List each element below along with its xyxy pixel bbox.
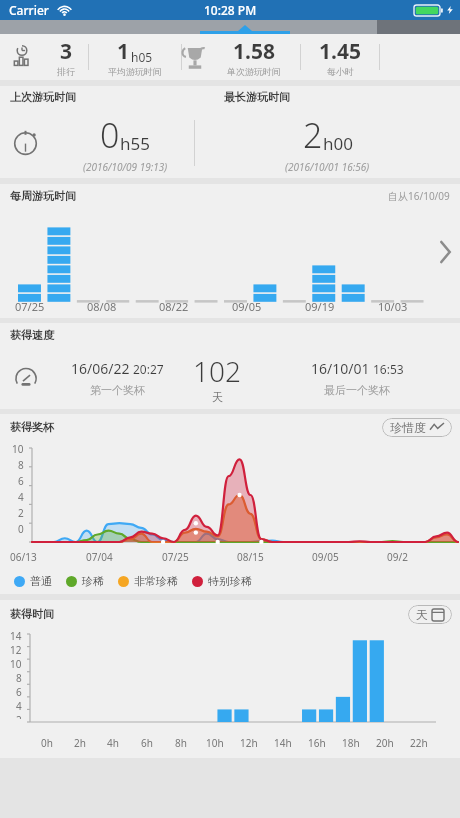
staticText: 最长游玩时间 — [224, 90, 290, 104]
staticText: 最后一个奖杯 — [324, 383, 390, 397]
staticText: 单次游玩时间 — [227, 66, 281, 77]
staticText: 非常珍稀 — [134, 574, 178, 588]
button[interactable]: 普通 — [14, 574, 52, 588]
staticText: 6h — [141, 736, 153, 750]
staticText: 102 — [193, 352, 241, 390]
staticText: 每周游玩时间 — [10, 189, 76, 203]
staticText: h55 — [120, 132, 150, 155]
staticText: 获得时间 — [10, 607, 54, 621]
staticText: 16/10/01 — [311, 359, 370, 378]
staticText: 08/08 — [87, 299, 117, 314]
staticText: 1 — [117, 37, 130, 66]
staticText: (2016/10/01 16:56) — [285, 160, 370, 174]
staticText: 12 — [10, 643, 22, 657]
staticText: 10 — [10, 657, 22, 671]
staticText: 2 — [18, 506, 24, 520]
staticText: 16h — [308, 736, 326, 750]
staticText: 14h — [274, 736, 292, 750]
staticText: 0 — [18, 522, 24, 536]
staticText: 07/04 — [86, 550, 113, 564]
staticText: 08/22 — [159, 299, 189, 314]
staticText: 10h — [206, 736, 224, 750]
staticText: 09/19 — [305, 299, 335, 314]
staticText: 6 — [16, 685, 22, 699]
staticText: 上次游玩时间 — [10, 90, 76, 104]
staticText: 自从16/10/09 — [388, 189, 450, 203]
staticText: 珍稀 — [82, 574, 104, 588]
staticText: 2 — [303, 112, 323, 158]
staticText: 3 — [60, 37, 73, 66]
staticText: 普通 — [30, 574, 52, 588]
button[interactable]: 珍稀 — [66, 574, 104, 588]
staticText: Carrier — [9, 2, 49, 18]
staticText: 每小时 — [327, 66, 354, 77]
staticText: (2016/10/09 19:13) — [83, 160, 168, 174]
staticText: 获得奖杯 — [10, 420, 54, 434]
staticText: 10/03 — [378, 299, 408, 314]
staticText: 1.45 — [319, 37, 361, 66]
staticText: 4 — [18, 490, 24, 504]
staticText: 6 — [18, 474, 24, 488]
staticText: 20:27 — [133, 361, 164, 377]
staticText: 07/25 — [162, 550, 189, 564]
staticText: 09/2 — [387, 550, 408, 564]
button[interactable]: 非常珍稀 — [118, 574, 178, 588]
staticText: 4h — [107, 736, 119, 750]
staticText: 14 — [10, 629, 22, 643]
staticText: h05 — [131, 49, 153, 65]
staticText: 22h — [410, 736, 428, 750]
staticText: 12h — [240, 736, 258, 750]
staticText: 8 — [16, 671, 22, 685]
button[interactable]: Rarity chart — [382, 418, 452, 437]
staticText: h00 — [323, 132, 353, 155]
staticText: 09/05 — [232, 299, 262, 314]
staticText: 平均游玩时间 — [108, 66, 162, 77]
button[interactable]: Day view — [408, 605, 452, 624]
staticText: 16/06/22 — [71, 359, 130, 378]
staticText: 4 — [16, 699, 22, 713]
staticText: 特别珍稀 — [208, 574, 252, 588]
staticText: 20h — [376, 736, 394, 750]
staticText: 2h — [74, 736, 86, 750]
staticText: 0h — [41, 736, 53, 750]
staticText: 获得速度 — [10, 328, 54, 342]
staticText: 排行 — [57, 66, 75, 77]
staticText: 第一个奖杯 — [90, 383, 145, 397]
other: Speed — [12, 364, 40, 392]
staticText: 07/25 — [15, 299, 45, 314]
staticText: 天 — [212, 390, 223, 404]
staticText: 09/05 — [312, 550, 339, 564]
staticText: 10 — [12, 442, 24, 456]
staticText: 珍惜度 — [390, 420, 426, 435]
staticText: 8 — [18, 458, 24, 472]
other: Stopwatch — [12, 128, 42, 158]
staticText: 18h — [342, 736, 360, 750]
staticText: 2 — [16, 713, 22, 719]
staticText: 16:53 — [373, 361, 404, 377]
staticText: 天 — [416, 607, 428, 622]
other: Trophy — [182, 43, 208, 71]
staticText: 08/15 — [237, 550, 264, 564]
other: Statistics — [10, 45, 34, 69]
staticText: 1.58 — [233, 37, 275, 66]
staticText: 8h — [175, 736, 187, 750]
staticText: 06/13 — [10, 550, 37, 564]
staticText: 10:28 PM — [204, 2, 257, 18]
button[interactable]: 特别珍稀 — [192, 574, 252, 588]
staticText: 0 — [100, 112, 120, 158]
